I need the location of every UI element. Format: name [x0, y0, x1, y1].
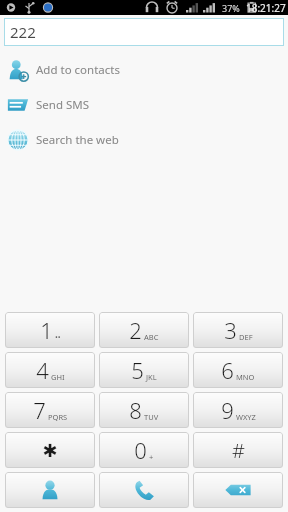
staticText: 18:21:27 — [246, 1, 286, 15]
button[interactable]: Search the web — [0, 122, 288, 157]
button[interactable]: # — [193, 432, 283, 468]
staticText: # — [232, 437, 245, 464]
staticText: + — [149, 452, 154, 462]
staticText: PQRS — [48, 412, 68, 422]
staticText: JKL — [146, 372, 157, 382]
button[interactable]: 4 — [5, 352, 95, 388]
staticText: ABC — [144, 332, 159, 342]
button[interactable]: 7 — [5, 392, 95, 428]
staticText: Send SMS — [36, 97, 90, 113]
staticText: 4 — [36, 355, 49, 385]
staticText: 7 — [33, 395, 46, 425]
button[interactable]: 5 — [99, 352, 189, 388]
staticText: •• — [55, 332, 61, 342]
button[interactable]: ✱ — [5, 432, 95, 468]
staticText: MNO — [236, 372, 255, 382]
staticText: 5 — [131, 355, 144, 385]
staticText: 1 — [40, 315, 53, 345]
staticText: 0 — [134, 435, 147, 465]
button[interactable]: 1 — [5, 312, 95, 348]
staticText: ✱ — [42, 440, 58, 461]
staticText: WXYZ — [236, 412, 256, 422]
staticText: 222 — [10, 22, 36, 42]
button[interactable]: Call — [99, 472, 189, 508]
staticText: 8 — [129, 395, 142, 425]
button[interactable]: Add to contacts — [0, 52, 288, 87]
button[interactable]: 222 — [4, 18, 284, 46]
staticText: 2 — [129, 315, 142, 345]
staticText: TUV — [144, 412, 159, 422]
staticText: DEF — [239, 332, 253, 342]
button[interactable]: Backspace — [193, 472, 283, 508]
staticText: 3 — [224, 315, 237, 345]
button[interactable]: 6 — [193, 352, 283, 388]
button[interactable]: Send SMS — [0, 87, 288, 122]
button[interactable]: Contacts — [5, 472, 95, 508]
button[interactable]: 2 — [99, 312, 189, 348]
staticText: 9 — [221, 395, 234, 425]
staticText: 37% — [222, 2, 240, 14]
button[interactable]: 0 — [99, 432, 189, 468]
button[interactable]: 9 — [193, 392, 283, 428]
staticText: Add to contacts — [36, 62, 120, 78]
staticText: Search the web — [36, 132, 119, 148]
button[interactable]: 3 — [193, 312, 283, 348]
staticText: GHI — [51, 372, 65, 382]
staticText: 6 — [221, 355, 234, 385]
button[interactable]: 8 — [99, 392, 189, 428]
